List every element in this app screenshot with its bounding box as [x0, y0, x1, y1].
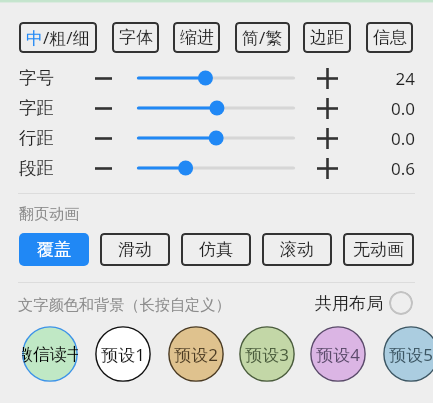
staticText: 0.0	[390, 127, 415, 150]
staticText: 字体	[119, 27, 153, 48]
button[interactable]: 行距 slider	[131, 126, 301, 150]
staticText: 0.0	[390, 97, 415, 120]
staticText: 信息	[373, 27, 407, 48]
button[interactable]: 预设4	[310, 326, 366, 382]
button[interactable]: Increase 段距	[315, 156, 339, 180]
button[interactable]: 信息	[366, 22, 413, 53]
staticText: 无动画	[353, 239, 404, 260]
staticText: 字号	[19, 67, 54, 89]
button[interactable]: 预设2	[168, 326, 224, 382]
staticText: 行距	[19, 127, 54, 149]
button[interactable]: 字距 slider	[131, 96, 301, 120]
button[interactable]: Increase 行距	[315, 126, 339, 150]
staticText: 预设3	[239, 343, 295, 366]
staticText: 预设5	[383, 343, 433, 366]
staticText: 预设2	[168, 343, 224, 366]
button[interactable]: 字体	[112, 22, 159, 53]
staticText: 仿真	[199, 239, 233, 260]
staticText: 预设4	[310, 343, 366, 366]
staticText: 中/粗/细	[26, 26, 90, 49]
other: Shared layout toggle	[389, 291, 413, 315]
staticText: 边距	[310, 27, 344, 48]
button[interactable]: 仿真	[181, 233, 251, 266]
button[interactable]: 微信读书	[22, 326, 78, 382]
button[interactable]: Decrease 字距	[91, 96, 115, 120]
button[interactable]: 无动画	[343, 233, 414, 266]
button[interactable]: 简/繁	[235, 22, 290, 53]
button[interactable]: Decrease 段距	[91, 156, 115, 180]
button[interactable]: 段距 slider	[131, 156, 301, 180]
staticText: 预设1	[95, 343, 151, 366]
button[interactable]: 字号 slider	[131, 66, 301, 90]
button[interactable]: 覆盖	[19, 233, 89, 266]
staticText: 简/繁	[242, 26, 283, 49]
staticText: 翻页动画	[19, 205, 79, 224]
button[interactable]: Increase 字号	[315, 66, 339, 90]
button[interactable]: 中/粗/细	[19, 22, 97, 53]
staticText: 24	[395, 67, 415, 90]
button[interactable]: 缩进	[173, 22, 220, 53]
staticText: 覆盖	[37, 239, 71, 260]
button[interactable]: 滚动	[262, 233, 332, 266]
button[interactable]: 预设1	[95, 326, 151, 382]
button[interactable]: 共用布局	[315, 291, 413, 315]
staticText: 字距	[19, 97, 54, 119]
button[interactable]: 预设5	[383, 326, 433, 382]
button[interactable]: Increase 字距	[315, 96, 339, 120]
button[interactable]: 边距	[303, 22, 351, 53]
staticText: 文字颜色和背景（长按自定义）	[18, 295, 231, 314]
staticText: 段距	[19, 157, 54, 179]
button[interactable]: Decrease 字号	[91, 66, 115, 90]
button[interactable]: Decrease 行距	[91, 126, 115, 150]
staticText: 滑动	[118, 239, 152, 260]
button[interactable]: 预设3	[239, 326, 295, 382]
staticText: 缩进	[180, 27, 214, 48]
staticText: 微信读书	[22, 344, 78, 365]
staticText: 共用布局	[315, 293, 383, 314]
staticText: 0.6	[390, 157, 415, 180]
staticText: 滚动	[280, 239, 314, 260]
button[interactable]: 滑动	[100, 233, 170, 266]
